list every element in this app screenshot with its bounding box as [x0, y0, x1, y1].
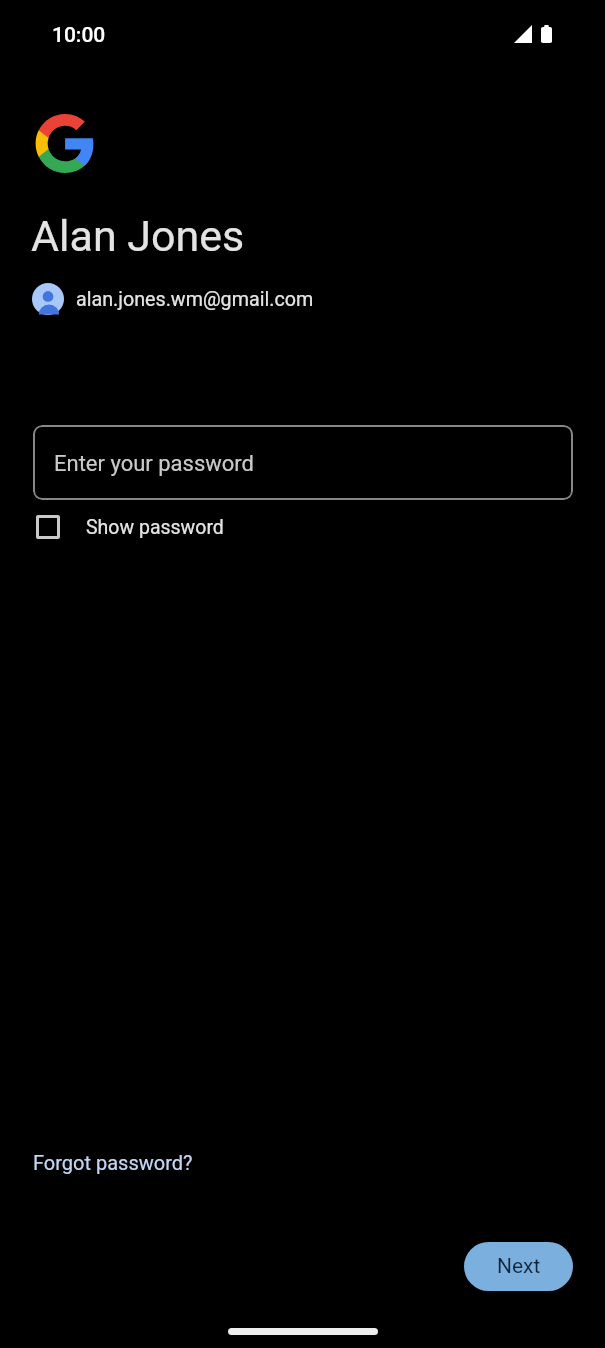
staticText: alan.jones.wm@gmail.com — [76, 288, 314, 311]
staticText: Show password — [86, 516, 224, 539]
button[interactable]: Account avatar — [20, 271, 326, 327]
staticText: 10:00 — [52, 23, 106, 48]
staticText: Forgot password? — [33, 1151, 193, 1174]
button[interactable]: Show password — [24, 506, 236, 548]
staticText: Next — [497, 1254, 541, 1279]
button[interactable]: Next — [464, 1242, 573, 1291]
other: Account avatar — [32, 283, 64, 315]
staticText: Alan Jones — [31, 211, 245, 261]
button[interactable]: Forgot password? — [21, 1139, 205, 1186]
staticText: Enter your password — [54, 451, 255, 477]
button[interactable]: Enter your password — [33, 425, 573, 500]
